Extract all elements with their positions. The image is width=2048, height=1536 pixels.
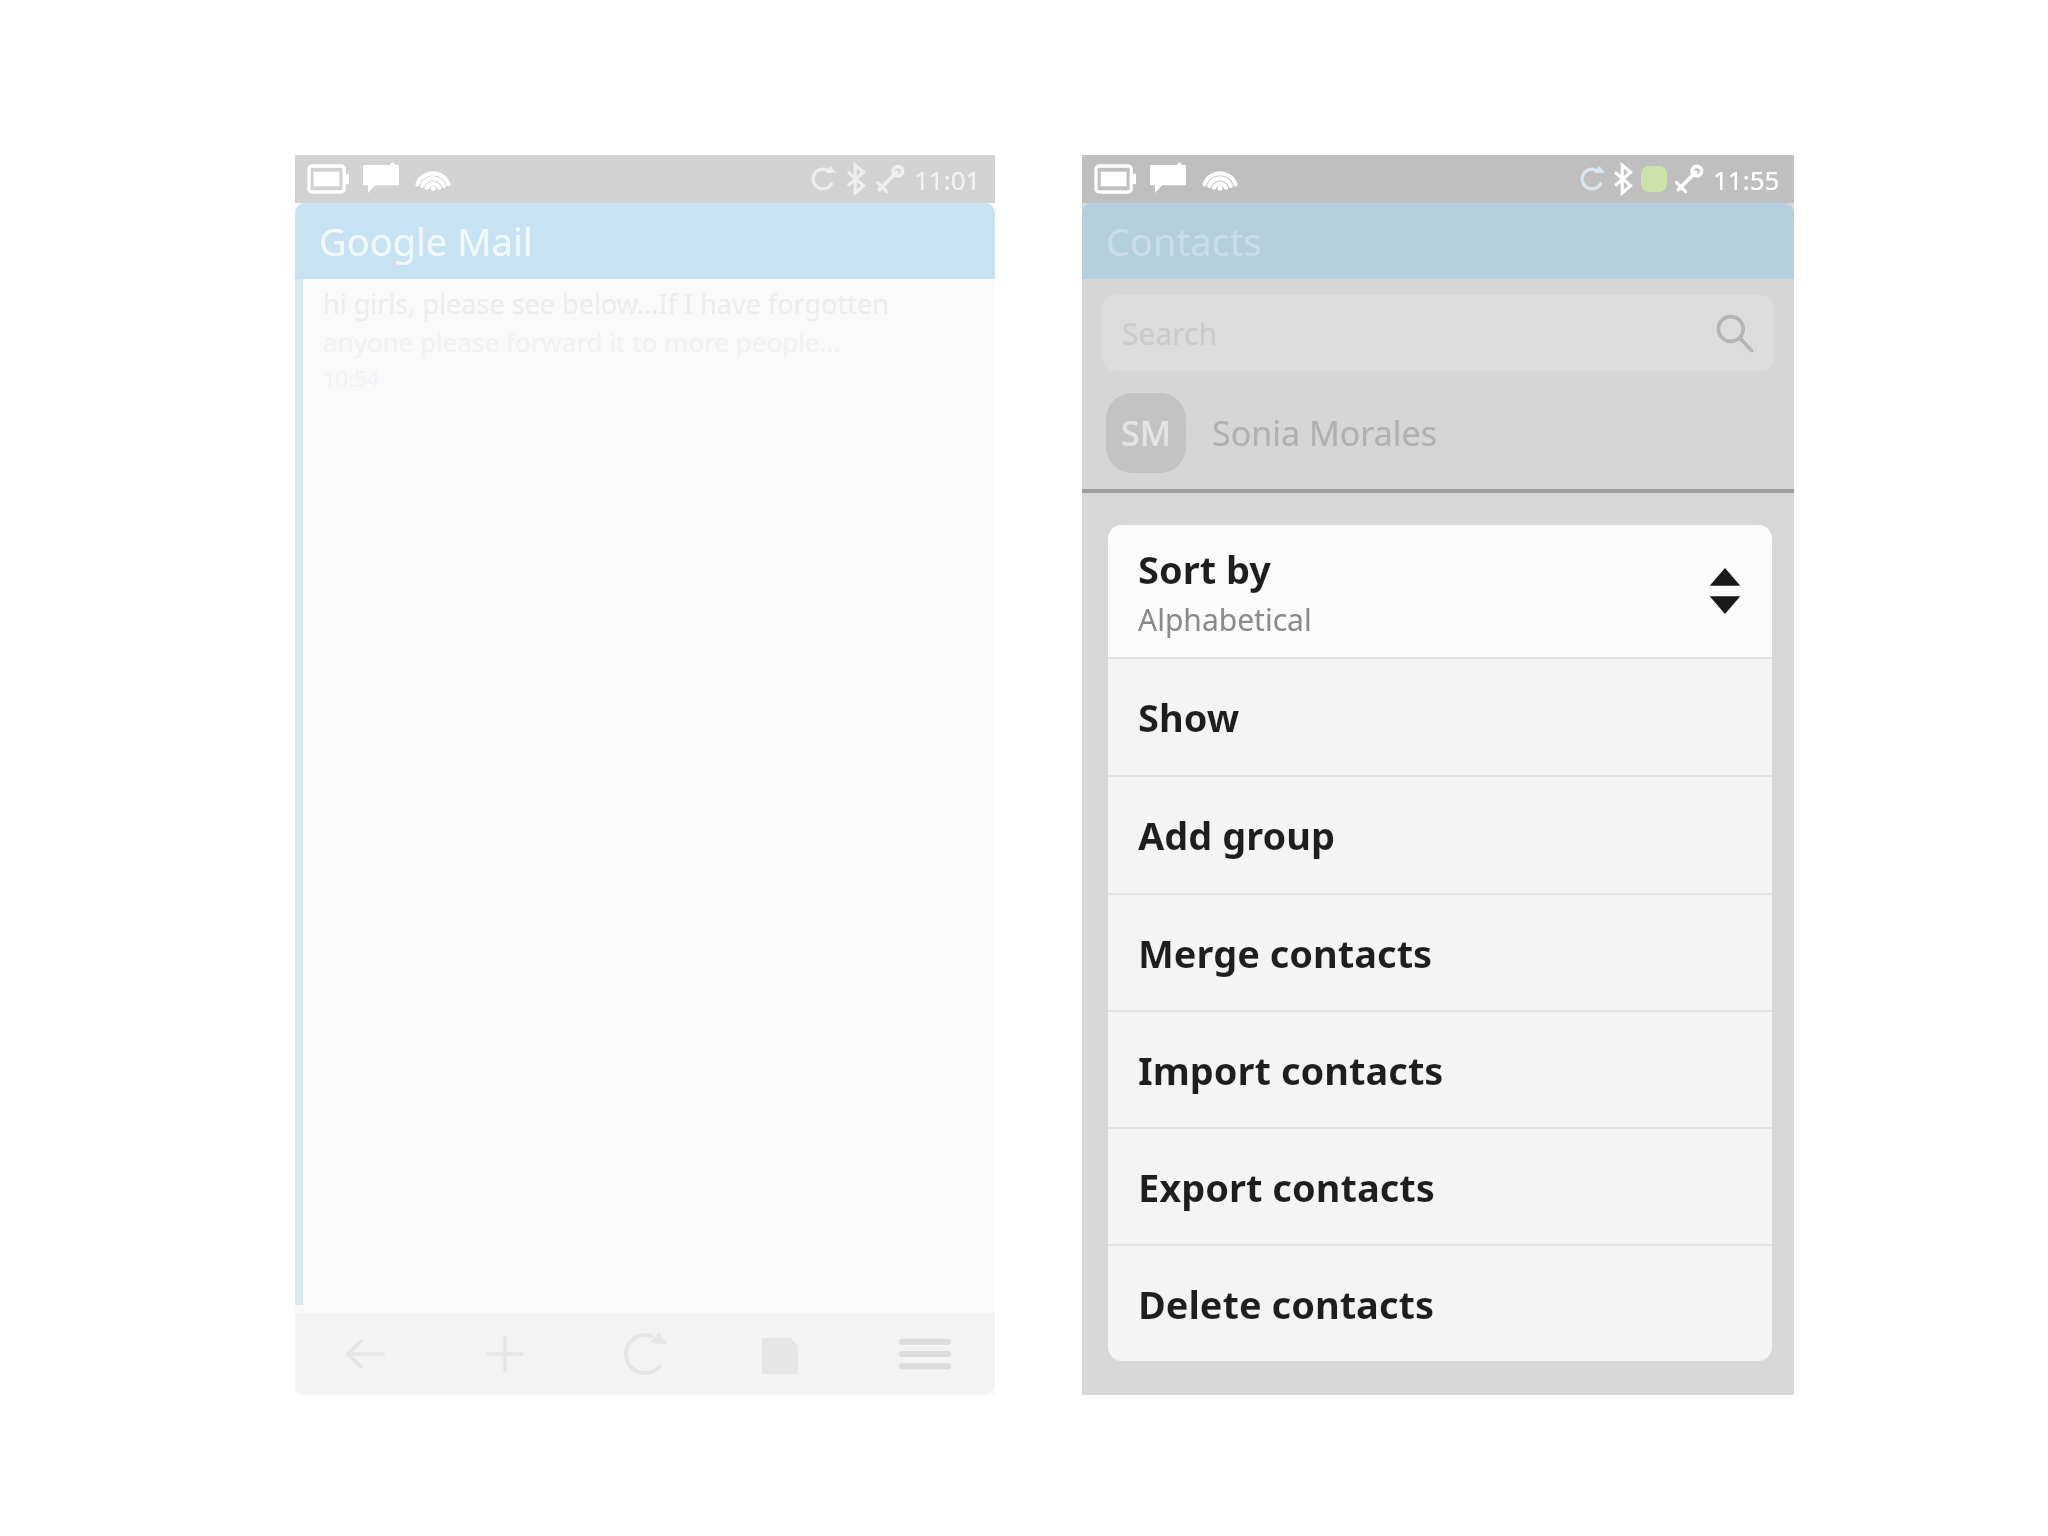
staticText: hi girls, please see below...If I have f… — [323, 285, 889, 322]
staticText: Alphabetical — [1138, 599, 1312, 640]
button[interactable]: Show — [1108, 659, 1772, 775]
staticText: Delete contacts — [1138, 1278, 1435, 1330]
staticText: Import contacts — [1138, 1044, 1444, 1096]
button[interactable]: Sort by — [1108, 525, 1772, 657]
button[interactable]: Import contacts — [1108, 1012, 1772, 1127]
button[interactable]: Folders — [715, 1313, 855, 1395]
staticText: Add group — [1138, 809, 1335, 861]
button[interactable]: Merge contacts — [1108, 895, 1772, 1010]
staticText: 11:01 — [914, 162, 981, 197]
button[interactable]: Menu — [855, 1313, 995, 1395]
staticText: Merge contacts — [1138, 927, 1433, 979]
staticText: 10:54 — [323, 363, 380, 393]
staticText: Export contacts — [1138, 1161, 1435, 1213]
staticText: SM — [1121, 410, 1171, 456]
button[interactable]: Contacts — [1082, 203, 1794, 279]
staticText: Show — [1138, 691, 1240, 743]
button[interactable]: Export contacts — [1108, 1129, 1772, 1244]
button[interactable]: Google Mail — [295, 203, 995, 279]
staticText: Sonia Morales — [1212, 410, 1438, 456]
staticText: Contacts — [1106, 215, 1262, 267]
staticText: Google Mail — [319, 215, 533, 267]
button[interactable]: Add group — [1108, 777, 1772, 893]
staticText: Search — [1122, 313, 1217, 354]
button[interactable]: Search — [1102, 295, 1774, 371]
button[interactable]: Delete contacts — [1108, 1246, 1772, 1361]
button[interactable]: hi girls, please see below...If I have f… — [295, 279, 995, 1313]
button[interactable]: SM — [1082, 387, 1794, 489]
staticText: Sort by — [1138, 543, 1272, 595]
staticText: 11:55 — [1713, 162, 1780, 197]
